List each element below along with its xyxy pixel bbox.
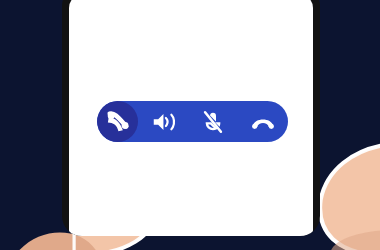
button[interactable]: Speaker bbox=[138, 101, 188, 142]
button[interactable]: Mute microphone bbox=[188, 101, 238, 142]
button[interactable]: End call bbox=[238, 101, 288, 142]
button[interactable]: Call bbox=[97, 101, 138, 142]
